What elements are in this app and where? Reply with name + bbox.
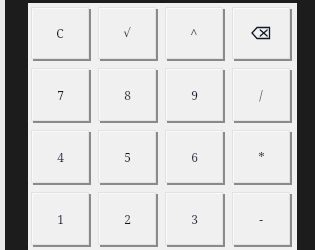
staticText: C: [56, 25, 64, 41]
button[interactable]: 9: [165, 68, 225, 123]
staticText: 1: [57, 211, 64, 227]
button[interactable]: C: [31, 7, 91, 61]
staticText: /: [259, 87, 263, 103]
button[interactable]: 1: [31, 192, 91, 247]
staticText: 2: [124, 211, 131, 227]
button[interactable]: Backspace: [232, 7, 292, 61]
staticText: 4: [57, 149, 64, 165]
staticText: √: [123, 26, 131, 40]
button[interactable]: 2: [98, 192, 158, 247]
button[interactable]: 5: [98, 130, 158, 185]
button[interactable]: 7: [31, 68, 91, 123]
staticText: *: [258, 148, 265, 166]
button[interactable]: *: [232, 130, 292, 185]
button[interactable]: 3: [165, 192, 225, 247]
button[interactable]: √: [98, 7, 158, 61]
staticText: ^: [190, 24, 198, 42]
staticText: 8: [124, 87, 131, 103]
button[interactable]: ^: [165, 7, 225, 61]
staticText: -: [259, 211, 263, 227]
button[interactable]: 8: [98, 68, 158, 123]
staticText: 6: [191, 149, 198, 165]
button[interactable]: -: [232, 192, 292, 247]
staticText: 7: [57, 87, 64, 103]
button[interactable]: 4: [31, 130, 91, 185]
button[interactable]: /: [232, 68, 292, 123]
button[interactable]: 6: [165, 130, 225, 185]
staticText: 5: [124, 149, 131, 165]
staticText: 3: [191, 211, 198, 227]
staticText: 9: [191, 87, 198, 103]
